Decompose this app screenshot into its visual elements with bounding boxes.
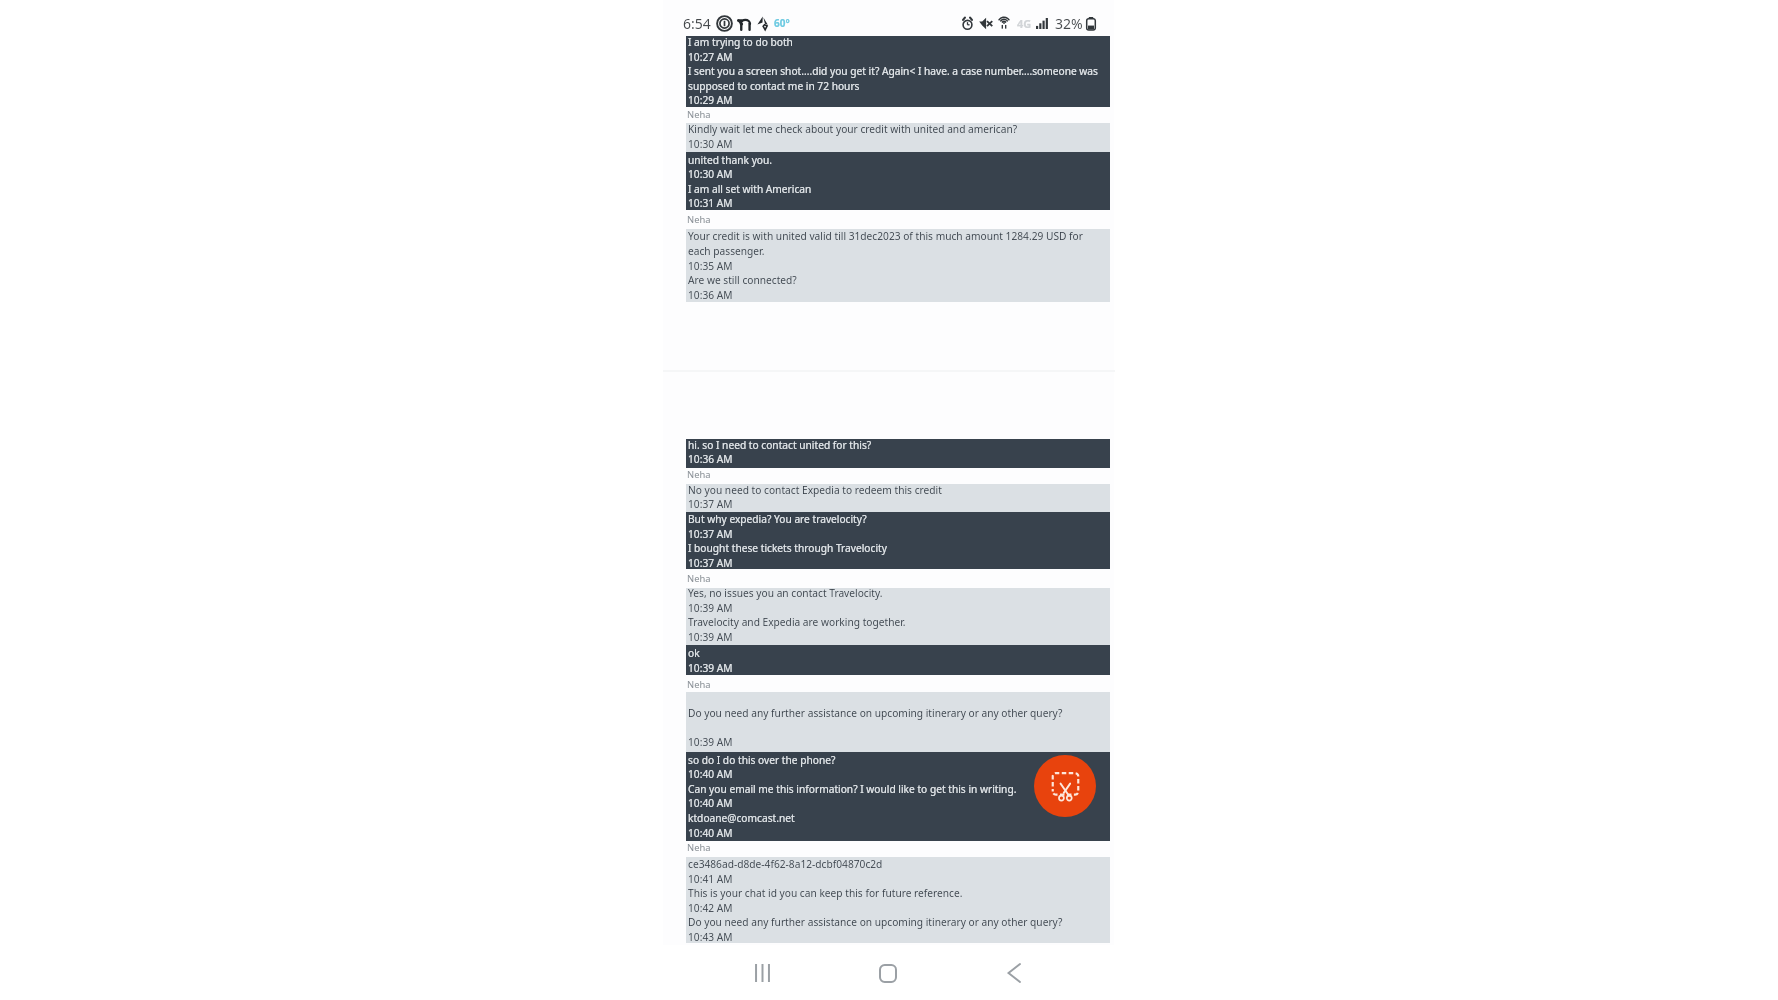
staticText: Neha	[687, 572, 711, 585]
staticText: 6:54	[683, 14, 711, 33]
staticText: ce3486ad-d8de-4f62-8a12-dcbf04870c2d	[688, 857, 883, 871]
button[interactable]: Crop screenshot	[1034, 755, 1096, 817]
staticText: united thank you.	[688, 153, 773, 167]
staticText: 60°	[774, 16, 790, 30]
staticText: 10:39 AM	[688, 735, 733, 749]
staticText: hi. so I need to contact united for this…	[688, 438, 872, 452]
staticText: 10:30 AM	[688, 137, 733, 151]
staticText: each passenger.	[688, 244, 765, 258]
staticText: 10:39 AM	[688, 601, 733, 615]
staticText: 10:40 AM	[688, 826, 733, 840]
staticText: 10:35 AM	[688, 259, 733, 273]
staticText: I am trying to do both	[688, 35, 793, 49]
staticText: 10:27 AM	[688, 50, 733, 64]
staticText: ktdoane@comcast.net	[688, 811, 795, 825]
button[interactable]: united thank you.	[686, 152, 1110, 210]
button[interactable]: Back	[990, 950, 1038, 996]
staticText: 32%	[1055, 14, 1083, 33]
staticText: ok	[688, 646, 700, 660]
button[interactable]: ok	[686, 645, 1110, 675]
staticText: supposed to contact me in 72 hours	[688, 79, 860, 93]
button[interactable]: Home	[864, 950, 912, 996]
button[interactable]: ce3486ad-d8de-4f62-8a12-dcbf04870c2d	[686, 857, 1110, 943]
staticText: 10:39 AM	[688, 630, 733, 644]
button[interactable]: Recent apps	[738, 950, 786, 996]
staticText: Neha	[687, 841, 711, 854]
button[interactable]: No you need to contact Expedia to redeem…	[686, 484, 1110, 512]
button[interactable]: Do you need any further assistance on up…	[686, 692, 1110, 752]
staticText: 10:36 AM	[688, 288, 733, 302]
staticText: I am all set with American	[688, 182, 812, 196]
staticText: Neha	[687, 108, 711, 121]
staticText: Kindly wait let me check about your cred…	[688, 122, 1018, 136]
button[interactable]: so do I do this over the phone?	[686, 752, 1110, 841]
staticText: This is your chat id you can keep this f…	[688, 886, 963, 900]
staticText: No you need to contact Expedia to redeem…	[688, 483, 942, 497]
staticText: I sent you a screen shot....did you get …	[688, 64, 1098, 78]
staticText: Do you need any further assistance on up…	[688, 915, 1063, 929]
staticText: 10:36 AM	[688, 452, 733, 466]
button[interactable]: Kindly wait let me check about your cred…	[686, 123, 1110, 152]
button[interactable]: hi. so I need to contact united for this…	[686, 439, 1110, 468]
staticText: 10:37 AM	[688, 527, 733, 541]
staticText: 10:29 AM	[688, 93, 733, 107]
staticText: 10:39 AM	[688, 661, 733, 675]
staticText: 10:37 AM	[688, 497, 733, 511]
staticText: 4G	[1017, 16, 1032, 31]
staticText: 10:42 AM	[688, 901, 733, 915]
button[interactable]: But why expedia? You are travelocity?	[686, 512, 1110, 569]
staticText: Do you need any further assistance on up…	[688, 706, 1063, 720]
staticText: I bought these tickets through Traveloci…	[688, 541, 887, 555]
staticText: Your credit is with united valid till 31…	[688, 229, 1083, 243]
staticText: Neha	[687, 213, 711, 226]
staticText: so do I do this over the phone?	[688, 753, 836, 767]
staticText: 10:31 AM	[688, 196, 733, 210]
staticText: 10:40 AM	[688, 796, 733, 810]
button[interactable]: I am trying to do both	[686, 36, 1110, 107]
button[interactable]: Yes, no issues you an contact Travelocit…	[686, 588, 1110, 645]
staticText: Neha	[687, 468, 711, 481]
staticText: 10:30 AM	[688, 167, 733, 181]
staticText: Are we still connected?	[688, 273, 797, 287]
staticText: Travelocity and Expedia are working toge…	[688, 615, 906, 629]
staticText: 10:41 AM	[688, 872, 733, 886]
staticText: 10:40 AM	[688, 767, 733, 781]
staticText: Neha	[687, 678, 711, 691]
staticText: 10:37 AM	[688, 556, 733, 570]
staticText: Yes, no issues you an contact Travelocit…	[688, 586, 883, 600]
staticText: 10:43 AM	[688, 930, 733, 944]
staticText: But why expedia? You are travelocity?	[688, 512, 867, 526]
button[interactable]: Your credit is with united valid till 31…	[686, 229, 1110, 302]
staticText: Can you email me this information? I wou…	[688, 782, 1017, 796]
